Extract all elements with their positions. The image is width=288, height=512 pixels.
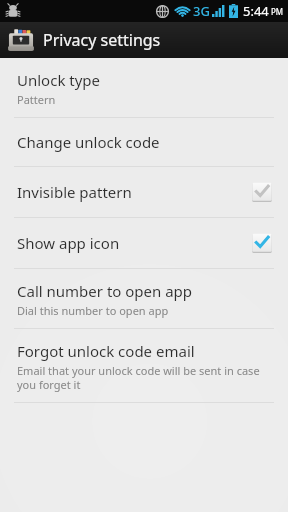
staticText: Forgot unlock code email <box>17 341 195 361</box>
button[interactable]: Checked <box>251 232 273 254</box>
staticText: Privacy settings <box>43 29 161 51</box>
button[interactable]: Show app icon <box>0 218 288 268</box>
staticText: 3G <box>193 2 210 20</box>
staticText: Dial this number to open app <box>17 303 169 318</box>
staticText: PM <box>271 6 284 17</box>
button[interactable]: Unchecked <box>251 181 273 203</box>
button[interactable]: Call number to open app <box>0 269 288 328</box>
button[interactable]: Invisible pattern <box>0 167 288 217</box>
button[interactable]: Unlock type <box>0 58 288 117</box>
staticText: Unlock type <box>17 70 101 90</box>
button[interactable]: Change unlock code <box>0 118 288 166</box>
button[interactable]: Forgot unlock code email <box>0 329 288 402</box>
staticText: Change unlock code <box>17 132 160 152</box>
staticText: Pattern <box>17 92 56 107</box>
button[interactable]: Privacy settings <box>0 22 288 58</box>
staticText: Show app icon <box>17 233 251 253</box>
staticText: 5:44 <box>243 2 269 20</box>
staticText: Invisible pattern <box>17 182 251 202</box>
staticText: Call number to open app <box>17 281 193 301</box>
staticText: Email that your unlock code will be sent… <box>17 363 271 392</box>
